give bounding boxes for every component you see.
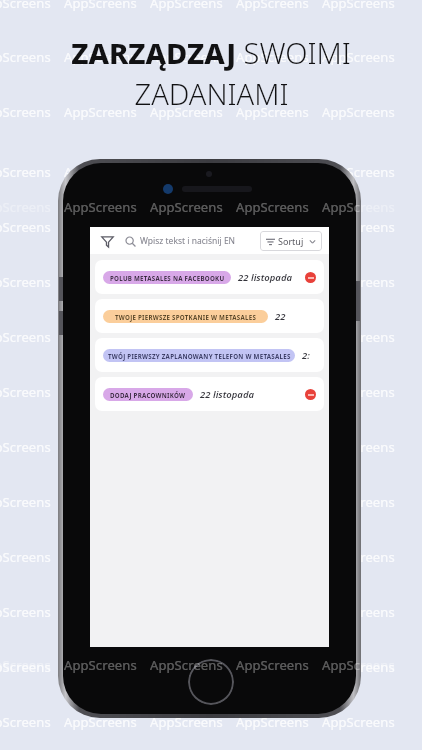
staticText: AppScreens	[322, 383, 395, 401]
staticText: AppScreens	[64, 328, 137, 346]
staticText: AppScreens	[236, 713, 309, 731]
button[interactable]: Delete task	[305, 272, 316, 283]
staticText: AppScreens	[64, 438, 137, 456]
staticText: AppScreens	[150, 658, 223, 676]
staticText: AppScreens	[0, 656, 51, 674]
staticText: AppScreens	[322, 328, 395, 346]
staticText: AppScreens	[64, 198, 137, 216]
staticText: AppScreens	[0, 383, 51, 401]
staticText: AppScreens	[236, 383, 309, 401]
staticText: AppScreens	[0, 658, 51, 676]
staticText: AppScreens	[322, 548, 395, 566]
staticText: AppScreens	[64, 713, 137, 731]
staticText: AppScreens	[322, 493, 395, 511]
staticText: AppScreens	[0, 603, 51, 621]
staticText: AppScreens	[322, 0, 395, 12]
staticText: AppScreens	[64, 656, 137, 674]
button[interactable]: DODAJ PRACOWNIKÓW	[95, 377, 324, 411]
staticText: AppScreens	[150, 103, 223, 121]
staticText: AppScreens	[0, 493, 51, 511]
staticText: AppScreens	[150, 273, 223, 291]
staticText: AppScreens	[322, 713, 395, 731]
staticText: AppScreens	[0, 198, 51, 216]
staticText: AppScreens	[150, 198, 223, 216]
staticText: AppScreens	[236, 658, 309, 676]
staticText: AppScreens	[0, 328, 51, 346]
staticText: AppScreens	[150, 713, 223, 731]
staticText: AppScreens	[322, 656, 395, 674]
staticText: AppScreens	[64, 493, 137, 511]
button[interactable]: TWÓJ PIERWSZY ZAPLANOWANY TELEFON W META…	[95, 338, 324, 372]
staticText: AppScreens	[322, 438, 395, 456]
staticText: AppScreens	[64, 218, 137, 236]
staticText: AppScreens	[0, 273, 51, 291]
staticText: AppScreens	[0, 0, 51, 12]
staticText: AppScreens	[0, 103, 51, 121]
button[interactable]: POLUB METASALES NA FACEBOOKU	[95, 260, 324, 294]
staticText: TWOJE PIERWSZE SPOTKANIE W METASALES	[115, 313, 257, 321]
staticText: AppScreens	[236, 103, 309, 121]
staticText: AppScreens	[236, 0, 309, 12]
staticText: DODAJ PRACOWNIKÓW	[110, 391, 186, 399]
staticText: AppScreens	[150, 0, 223, 12]
staticText: ZARZĄDZAJ SWOIMI	[71, 33, 351, 72]
staticText: ZADANIAMI	[134, 74, 289, 113]
staticText: AppScreens	[0, 218, 51, 236]
staticText: AppScreens	[322, 218, 395, 236]
staticText: AppScreens	[322, 198, 395, 216]
staticText: AppScreens	[64, 48, 137, 66]
button[interactable]: Wpisz tekst i naciśnij EN	[124, 235, 260, 247]
staticText: AppScreens	[0, 438, 51, 456]
button[interactable]: Sortuj	[260, 231, 322, 251]
staticText: Wpisz tekst i naciśnij EN	[140, 235, 236, 247]
staticText: AppScreens	[0, 713, 51, 731]
staticText: AppScreens	[64, 658, 137, 676]
button[interactable]: Home button	[188, 659, 234, 705]
button[interactable]: TWOJE PIERWSZE SPOTKANIE W METASALES	[95, 299, 324, 333]
staticText: AppScreens	[322, 103, 395, 121]
staticText: AppScreens	[64, 273, 137, 291]
staticText: AppScreens	[0, 163, 51, 181]
staticText: AppScreens	[322, 163, 395, 181]
staticText: AppScreens	[150, 163, 223, 181]
staticText: AppScreens	[322, 603, 395, 621]
staticText: AppScreens	[150, 656, 223, 674]
staticText: AppScreens	[0, 48, 51, 66]
staticText: AppScreens	[236, 48, 309, 66]
staticText: TWÓJ PIERWSZY ZAPLANOWANY TELEFON W META…	[108, 352, 291, 360]
staticText: 2:	[302, 349, 310, 362]
staticText: AppScreens	[150, 328, 223, 346]
staticText: AppScreens	[64, 548, 137, 566]
staticText: Sortuj	[278, 235, 304, 247]
staticText: AppScreens	[150, 383, 223, 401]
button[interactable]: Delete task	[305, 389, 316, 400]
staticText: POLUB METASALES NA FACEBOOKU	[110, 274, 225, 282]
staticText: AppScreens	[322, 48, 395, 66]
staticText: AppScreens	[64, 103, 137, 121]
staticText: AppScreens	[322, 658, 395, 676]
staticText: 22 listopada	[238, 271, 293, 284]
staticText: AppScreens	[236, 218, 309, 236]
staticText: 22 listopada	[200, 388, 255, 401]
staticText: AppScreens	[236, 656, 309, 674]
staticText: AppScreens	[64, 603, 137, 621]
staticText: AppScreens	[0, 548, 51, 566]
staticText: AppScreens	[64, 383, 137, 401]
staticText: AppScreens	[150, 48, 223, 66]
staticText: AppScreens	[64, 0, 137, 12]
staticText: AppScreens	[150, 218, 223, 236]
staticText: AppScreens	[236, 328, 309, 346]
staticText: 22 listopad.	[275, 310, 316, 323]
staticText: AppScreens	[64, 163, 137, 181]
button[interactable]: Filter	[97, 231, 117, 251]
staticText: AppScreens	[322, 273, 395, 291]
